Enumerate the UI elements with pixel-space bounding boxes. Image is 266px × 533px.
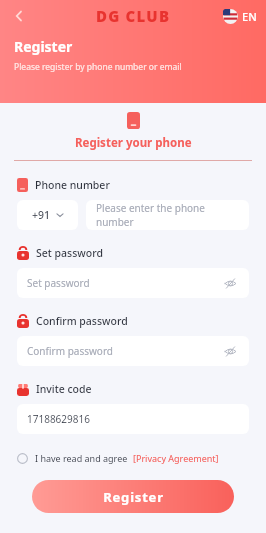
staticText: Please register by phone number or email — [14, 61, 182, 73]
button[interactable]: +91 — [17, 200, 78, 230]
button[interactable]: Back — [6, 3, 32, 29]
staticText: Confirm password — [36, 314, 128, 328]
button[interactable]: Register — [32, 480, 234, 513]
staticText: Set password — [36, 246, 103, 260]
staticText: +91 — [32, 208, 51, 222]
button[interactable]: Register your phone — [67, 134, 200, 152]
staticText: Confirm password — [27, 344, 113, 358]
button[interactable]: Confirm password — [17, 336, 249, 366]
staticText: EN — [242, 9, 257, 24]
staticText: Register your phone — [75, 135, 192, 151]
button[interactable]: 17188629816 — [17, 404, 249, 434]
button[interactable]: Show password — [221, 342, 239, 360]
staticText: Please enter the phone number — [96, 201, 239, 229]
staticText: Set password — [27, 276, 90, 290]
staticText: [Privacy Agreement] — [133, 452, 219, 464]
button[interactable]: Please enter the phone number — [86, 200, 249, 230]
staticText: Register — [103, 488, 164, 506]
staticText: DG CLUB — [96, 6, 171, 26]
staticText: Register — [14, 37, 73, 56]
staticText: 17188629816 — [27, 412, 90, 426]
staticText: Phone number — [35, 178, 110, 192]
button[interactable]: Set password — [17, 268, 249, 298]
button[interactable]: I have read and agree — [17, 450, 249, 466]
button[interactable]: EN — [221, 7, 259, 26]
staticText: I have read and agree — [35, 452, 128, 464]
staticText: Invite code — [36, 382, 92, 396]
button[interactable]: Show password — [221, 274, 239, 292]
